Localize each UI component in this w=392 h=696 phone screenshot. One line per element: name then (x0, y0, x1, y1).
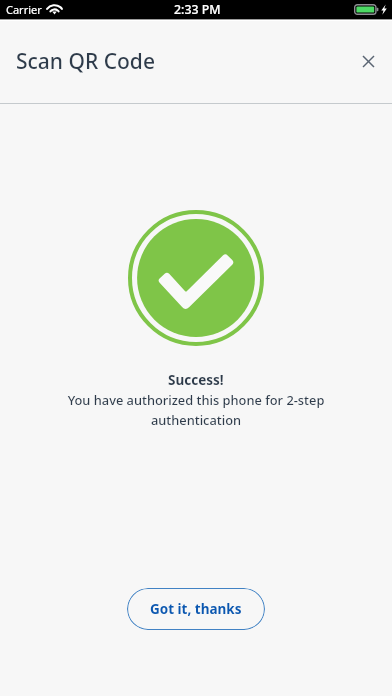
staticText: Success! (168, 371, 224, 389)
staticText: Carrier (6, 2, 42, 17)
staticText: Got it, thanks (150, 600, 242, 618)
button[interactable]: Close (349, 42, 388, 81)
button[interactable]: Got it, thanks (127, 588, 265, 630)
staticText: You have authorized this phone for 2-ste… (51, 391, 341, 429)
staticText: Scan QR Code (16, 47, 155, 76)
staticText: 2:33 PM (174, 1, 221, 18)
